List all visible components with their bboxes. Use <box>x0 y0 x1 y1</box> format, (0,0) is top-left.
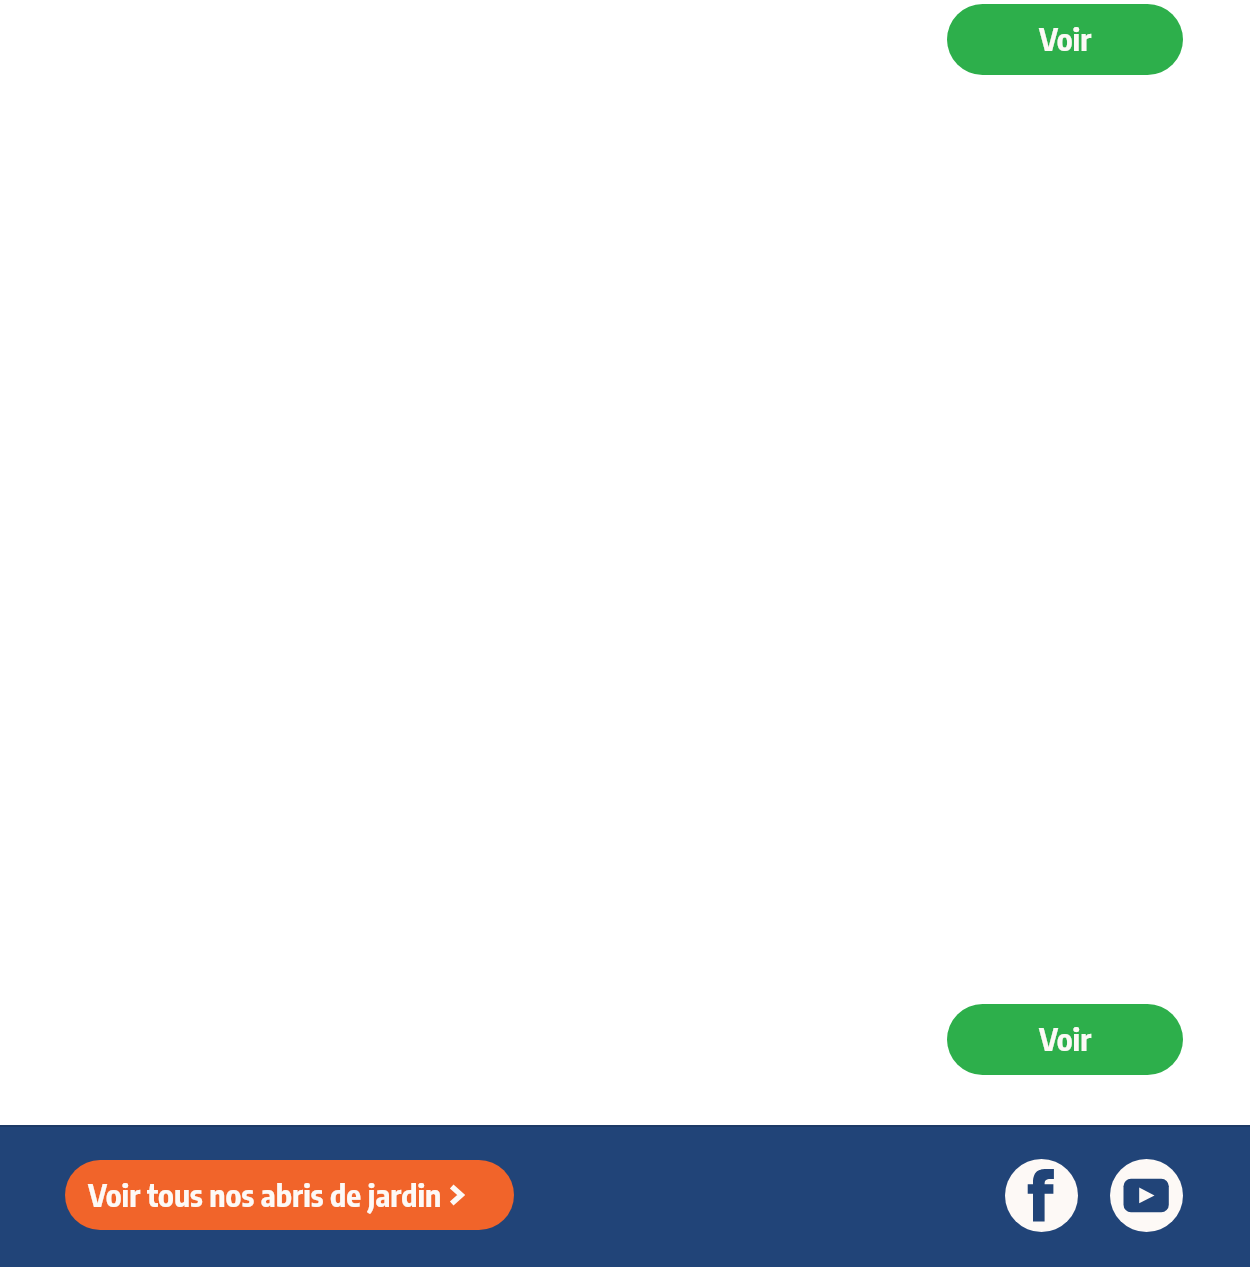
button[interactable]: Voir <box>947 4 1183 75</box>
staticText: Voir <box>1039 19 1092 58</box>
button[interactable]: Voir tous nos abris de jardin <box>65 1160 514 1230</box>
staticText: Voir <box>1039 1019 1092 1058</box>
button[interactable]: Facebook <box>1005 1159 1078 1232</box>
staticText: Voir tous nos abris de jardin <box>88 1175 442 1214</box>
button[interactable]: Voir <box>947 1004 1183 1075</box>
button[interactable]: YouTube <box>1110 1159 1183 1232</box>
